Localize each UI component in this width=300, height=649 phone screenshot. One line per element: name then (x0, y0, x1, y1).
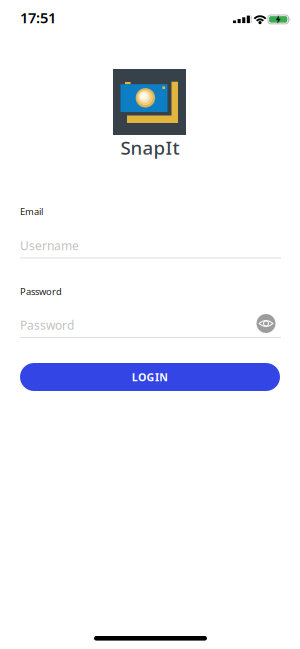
staticText: LOGIN (132, 370, 168, 384)
staticText: 17:51 (20, 8, 56, 27)
button[interactable]: LOGIN (20, 363, 280, 391)
staticText: Password (20, 317, 74, 333)
button[interactable]: Password (20, 317, 281, 338)
staticText: Password (20, 285, 62, 298)
button[interactable] (256, 314, 275, 333)
staticText: Email (20, 205, 43, 218)
staticText: SnapIt (120, 135, 179, 160)
button[interactable]: Username (20, 237, 281, 258)
staticText: Username (20, 237, 79, 253)
